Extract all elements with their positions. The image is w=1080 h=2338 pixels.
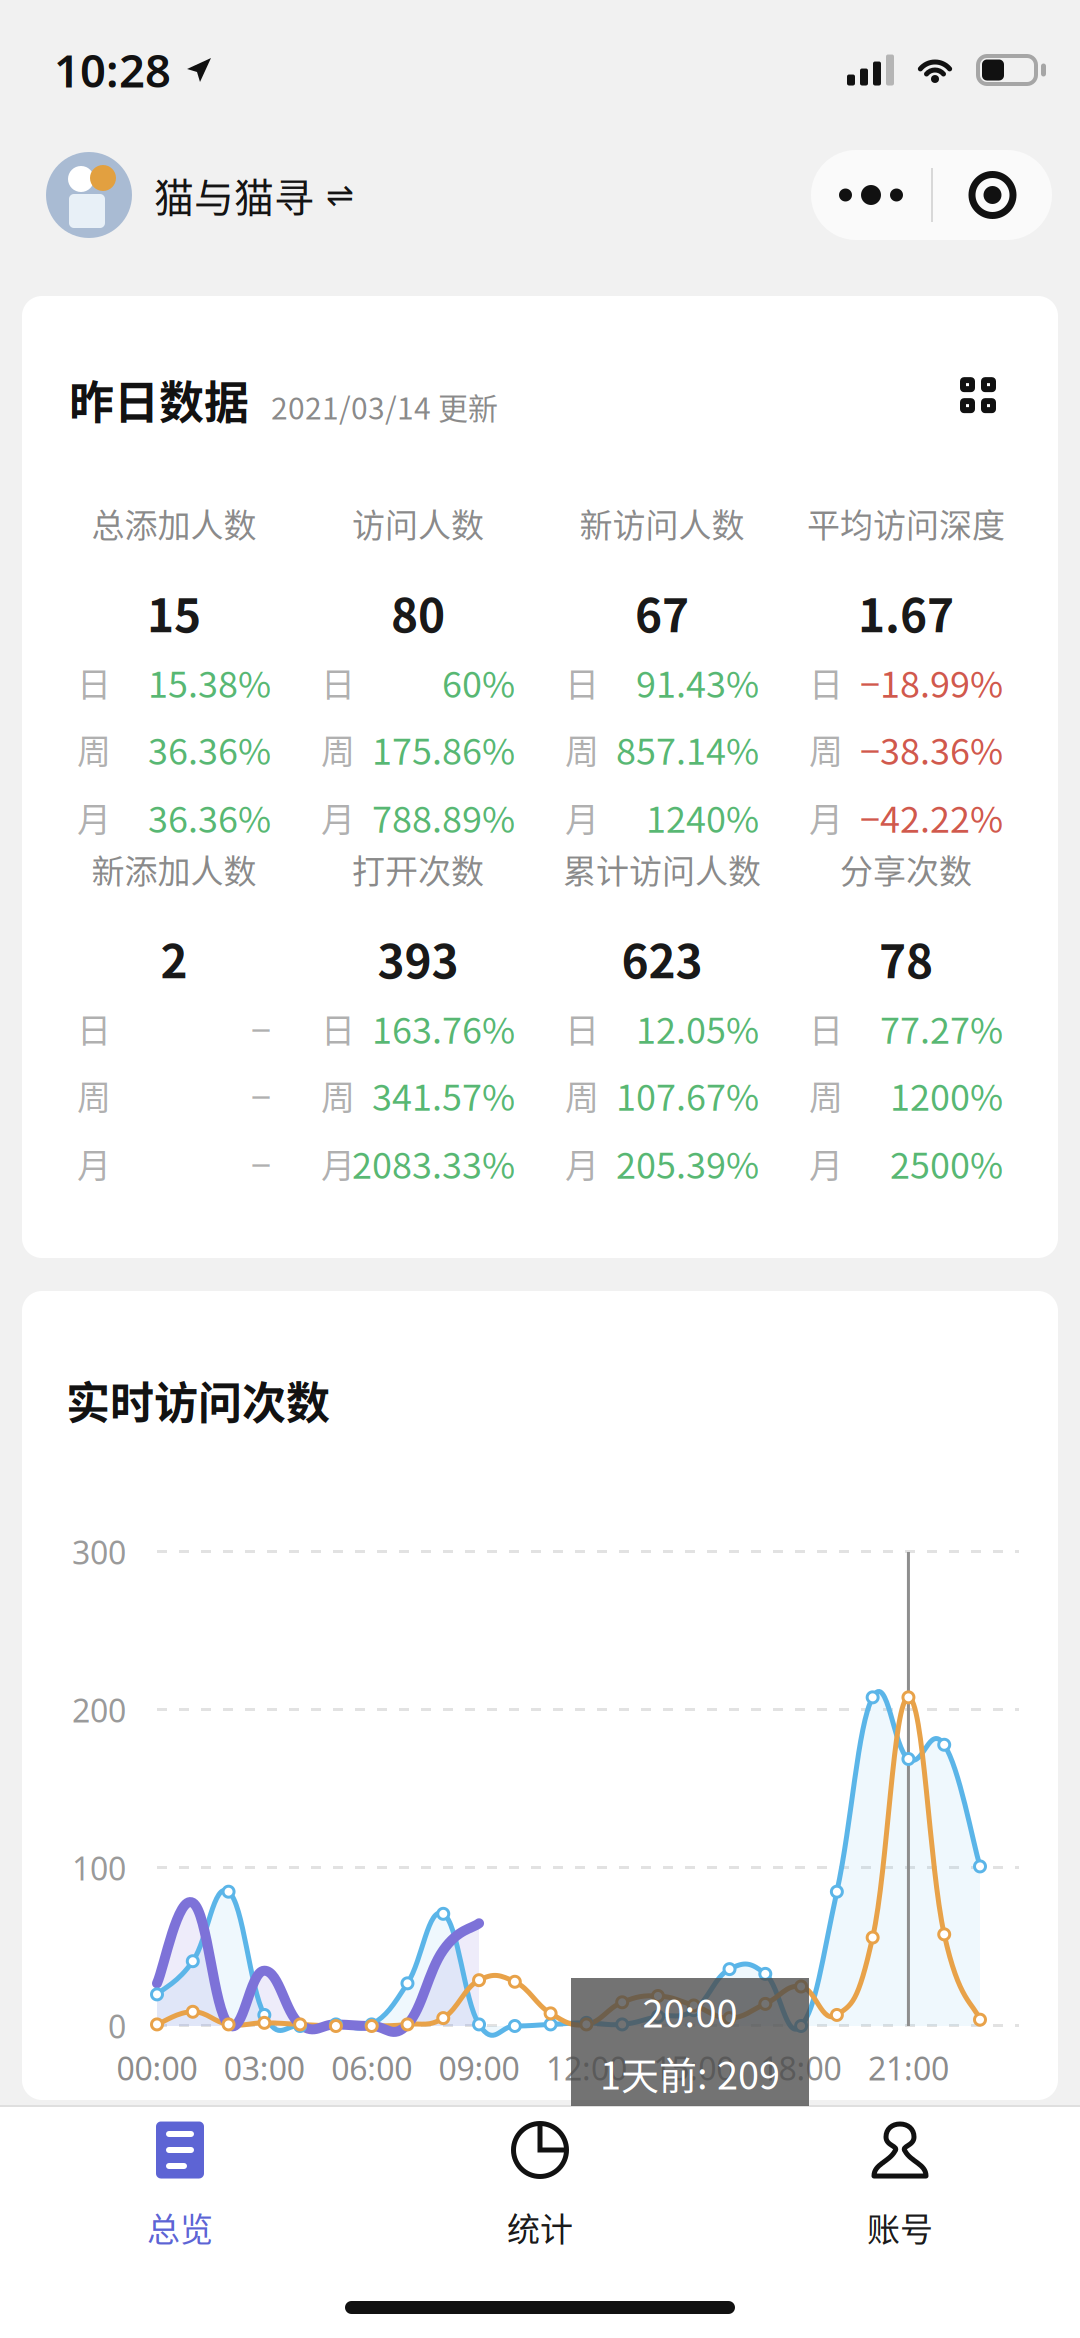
- staticText: 周: [809, 1070, 843, 1120]
- staticText: 周: [565, 724, 599, 774]
- staticText: 昨日数据: [69, 367, 249, 432]
- staticText: 日: [321, 657, 355, 707]
- staticText: 1240%: [646, 791, 759, 843]
- button[interactable]: Grid view: [950, 376, 1006, 432]
- staticText: 12:00: [546, 2047, 627, 2089]
- staticText: 周: [809, 724, 843, 774]
- staticText: 2083.33%: [352, 1137, 515, 1189]
- staticText: 账号: [867, 2203, 933, 2251]
- staticText: 100: [72, 1847, 126, 1889]
- staticText: 00:00: [116, 2047, 197, 2089]
- staticText: 统计: [507, 2203, 573, 2251]
- staticText: 91.43%: [636, 656, 759, 708]
- staticText: 打开次数: [352, 845, 484, 893]
- staticText: 341.57%: [372, 1069, 515, 1121]
- staticText: 15.38%: [148, 656, 271, 708]
- staticText: 日: [77, 1003, 111, 1053]
- staticText: 日: [77, 657, 111, 707]
- staticText: 175.86%: [372, 723, 515, 775]
- staticText: 36.36%: [148, 723, 271, 775]
- staticText: 月: [809, 792, 843, 842]
- button[interactable]: More: [811, 150, 931, 240]
- staticText: 623: [621, 925, 702, 991]
- staticText: 107.67%: [616, 1069, 759, 1121]
- staticText: 日: [809, 1003, 843, 1053]
- button[interactable]: 账号: [720, 2121, 1080, 2249]
- staticText: 月: [321, 792, 355, 842]
- staticText: 月: [77, 792, 111, 842]
- staticText: 总添加人数: [91, 499, 256, 547]
- staticText: 月: [565, 1138, 599, 1188]
- staticText: 77.27%: [880, 1002, 1003, 1054]
- staticText: 18:00: [761, 2047, 842, 2089]
- staticText: 06:00: [331, 2047, 412, 2089]
- staticText: 857.14%: [616, 723, 759, 775]
- staticText: ⇌: [326, 176, 354, 214]
- button[interactable]: 统计: [360, 2121, 720, 2249]
- staticText: 日: [809, 657, 843, 707]
- staticText: 60%: [442, 656, 515, 708]
- staticText: 10:28: [54, 40, 171, 100]
- staticText: 300: [72, 1531, 126, 1573]
- staticText: −: [251, 1002, 271, 1054]
- staticText: 205.39%: [616, 1137, 759, 1189]
- staticText: 21:00: [868, 2047, 949, 2089]
- staticText: 周: [321, 724, 355, 774]
- staticText: 15:00: [653, 2047, 734, 2089]
- button[interactable]: 总览: [0, 2121, 360, 2249]
- staticText: 新访问人数: [579, 499, 744, 547]
- staticText: 周: [77, 1070, 111, 1120]
- staticText: 80: [391, 579, 445, 645]
- staticText: 78: [879, 925, 933, 991]
- staticText: 周: [321, 1070, 355, 1120]
- staticText: 周: [565, 1070, 599, 1120]
- staticText: 分享次数: [840, 845, 972, 893]
- staticText: 15: [147, 579, 201, 645]
- staticText: 日: [321, 1003, 355, 1053]
- staticText: 1200%: [890, 1069, 1003, 1121]
- staticText: 2021/03/14 更新: [271, 385, 498, 428]
- staticText: 20:00: [642, 1983, 737, 2038]
- staticText: −42.22%: [860, 791, 1003, 843]
- staticText: 36.36%: [148, 791, 271, 843]
- staticText: −38.36%: [860, 723, 1003, 775]
- staticText: 2500%: [890, 1137, 1003, 1189]
- staticText: 日: [565, 657, 599, 707]
- staticText: 日: [565, 1003, 599, 1053]
- staticText: 12.05%: [636, 1002, 759, 1054]
- staticText: 实时访问次数: [66, 1368, 330, 1432]
- staticText: 03:00: [224, 2047, 305, 2089]
- staticText: 163.76%: [372, 1002, 515, 1054]
- staticText: 周: [77, 724, 111, 774]
- staticText: 67: [635, 579, 689, 645]
- staticText: 新添加人数: [91, 845, 256, 893]
- staticText: 平均访问深度: [807, 499, 1005, 547]
- staticText: −: [251, 1069, 271, 1121]
- staticText: 393: [377, 925, 458, 991]
- button[interactable]: Close: [933, 150, 1052, 240]
- staticText: 月: [77, 1138, 111, 1188]
- staticText: 1天前: 209: [600, 2045, 780, 2100]
- staticText: −: [251, 1137, 271, 1189]
- staticText: 访问人数: [352, 499, 484, 547]
- staticText: 猫与猫寻: [154, 166, 314, 224]
- staticText: 月: [565, 792, 599, 842]
- staticText: 09:00: [438, 2047, 519, 2089]
- staticText: 累计访问人数: [563, 845, 761, 893]
- staticText: 月: [809, 1138, 843, 1188]
- staticText: 月: [321, 1138, 355, 1188]
- staticText: −18.99%: [860, 656, 1003, 708]
- staticText: 1.67: [858, 579, 954, 645]
- staticText: 788.89%: [372, 791, 515, 843]
- staticText: 200: [72, 1689, 126, 1731]
- staticText: 总览: [147, 2203, 213, 2251]
- staticText: 2: [160, 925, 187, 991]
- staticText: 0: [108, 2005, 126, 2047]
